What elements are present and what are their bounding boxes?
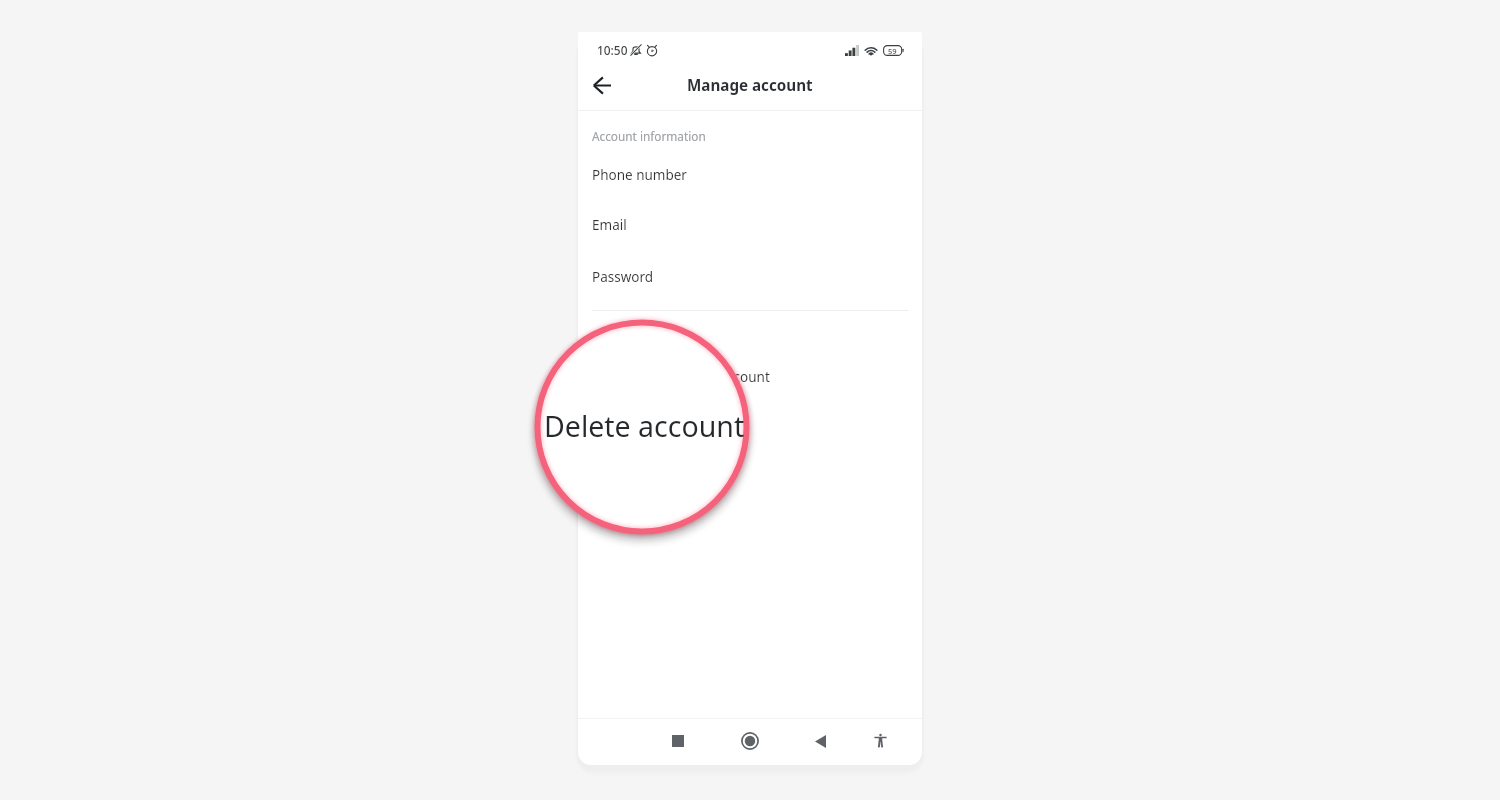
- button[interactable]: Accessibility: [859, 720, 901, 762]
- button[interactable]: Back: [582, 65, 622, 105]
- staticText: Account information: [592, 128, 706, 144]
- button[interactable]: Recents: [657, 720, 699, 762]
- staticText: Delete account: [544, 407, 745, 446]
- button[interactable]: Home: [729, 720, 771, 762]
- staticText: Manage account: [687, 75, 813, 96]
- staticText: 59: [888, 46, 897, 56]
- staticText: Email: [592, 216, 627, 234]
- staticText: Delete account: [675, 368, 770, 386]
- staticText: Phone number: [592, 166, 687, 184]
- button[interactable]: Password: [578, 252, 922, 302]
- button[interactable]: Email: [578, 200, 922, 250]
- button[interactable]: Delete account: [578, 352, 922, 402]
- staticText: 10:50: [597, 42, 628, 58]
- button[interactable]: Back: [799, 720, 841, 762]
- button[interactable]: Phone number: [578, 150, 922, 200]
- staticText: Password: [592, 268, 654, 286]
